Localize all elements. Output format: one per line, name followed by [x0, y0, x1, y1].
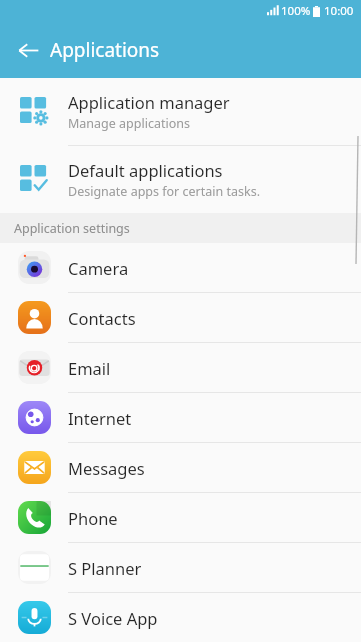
button[interactable]: Internet — [0, 393, 361, 442]
staticText: Messages — [68, 457, 145, 479]
button[interactable]: Application manager — [0, 78, 361, 145]
staticText: Application settings — [14, 220, 130, 237]
staticText: Contacts — [68, 307, 136, 329]
staticText: 10:00 — [324, 3, 354, 19]
staticText: Email — [68, 357, 111, 379]
button[interactable]: Camera — [0, 243, 361, 292]
button[interactable]: Phone — [0, 493, 361, 542]
staticText: Designate apps for certain tasks. — [68, 183, 260, 200]
staticText: Phone — [68, 507, 118, 529]
staticText: S Planner — [68, 557, 142, 579]
button[interactable]: Back — [8, 30, 48, 70]
staticText: Application manager — [68, 91, 230, 113]
staticText: Manage applications — [68, 115, 190, 132]
button[interactable]: Default applications — [0, 146, 361, 213]
button[interactable]: S Planner — [0, 543, 361, 592]
staticText: Camera — [68, 257, 129, 279]
staticText: S Voice App — [68, 607, 158, 629]
button[interactable]: Email — [0, 343, 361, 392]
staticText: Internet — [68, 407, 132, 429]
button[interactable]: S Voice App — [0, 593, 361, 642]
staticText: Applications — [50, 37, 160, 63]
button[interactable]: Contacts — [0, 293, 361, 342]
staticText: Default applications — [68, 159, 223, 181]
button[interactable]: Messages — [0, 443, 361, 492]
staticText: 100% — [281, 3, 311, 19]
